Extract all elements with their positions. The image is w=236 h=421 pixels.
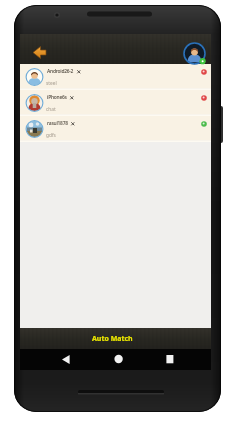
staticText: chat <box>46 106 56 113</box>
button[interactable]: Auto Match <box>20 328 211 349</box>
staticText: rasul1878 <box>47 120 68 127</box>
staticText: iPhone6s <box>47 94 67 101</box>
staticText: Android26-2 <box>47 68 74 75</box>
button[interactable] <box>50 349 82 370</box>
button[interactable]: iPhone6s <box>20 90 211 116</box>
button[interactable] <box>154 349 186 370</box>
staticText: gdfs <box>46 132 56 139</box>
staticText: Auto Match <box>92 334 133 344</box>
button[interactable] <box>183 42 206 65</box>
button[interactable]: Android26-2 <box>20 64 211 90</box>
staticText: steel <box>46 80 57 87</box>
button[interactable] <box>103 349 135 370</box>
button[interactable]: rasul1878 <box>20 116 211 142</box>
button[interactable] <box>28 43 50 62</box>
